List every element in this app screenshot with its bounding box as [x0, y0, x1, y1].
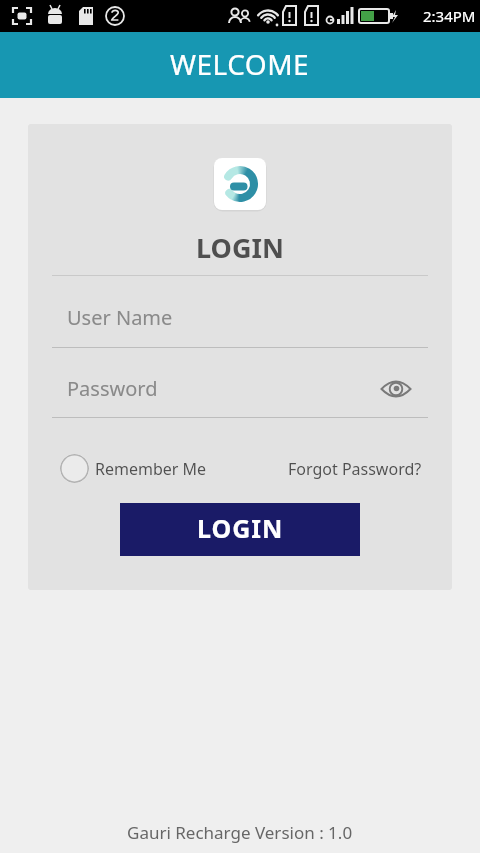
- staticText: Forgot Password?: [288, 458, 422, 480]
- button[interactable]: Remember Me: [60, 454, 207, 483]
- button[interactable]: User Name: [52, 304, 428, 348]
- staticText: LOGIN: [196, 229, 284, 266]
- staticText: 2:34PM: [423, 6, 476, 26]
- staticText: Remember Me: [95, 458, 207, 480]
- staticText: Gauri Recharge Version : 1.0: [127, 821, 353, 844]
- staticText: Password: [67, 375, 158, 402]
- staticText: WELCOME: [170, 45, 310, 83]
- staticText: User Name: [67, 304, 173, 331]
- button[interactable]: Forgot Password?: [288, 458, 422, 480]
- staticText: LOGIN: [197, 511, 284, 545]
- button[interactable]: Password: [52, 375, 428, 418]
- button[interactable]: LOGIN: [120, 503, 360, 556]
